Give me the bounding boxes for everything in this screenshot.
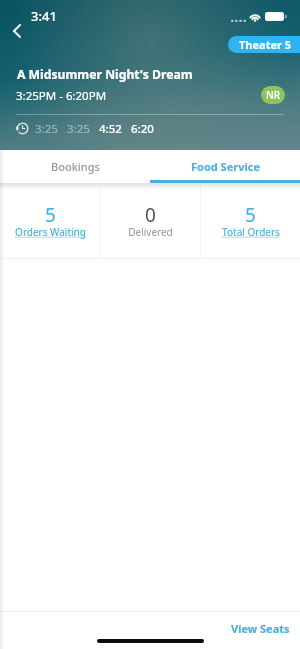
button[interactable]: Food Service (150, 150, 300, 185)
button[interactable]: Bookings (0, 150, 150, 185)
staticText: Orders Waiting (15, 225, 86, 239)
staticText: Food Service (191, 159, 260, 174)
staticText: 4:52 (99, 121, 122, 137)
button[interactable]: Theater 5 (228, 36, 300, 53)
staticText: 3:25PM - 6:20PM (16, 88, 107, 104)
button[interactable]: 5 (201, 185, 300, 259)
staticText: View Seats (231, 621, 290, 636)
staticText: NR (266, 88, 281, 102)
button[interactable]: Back (5, 20, 29, 42)
staticText: Bookings (51, 159, 100, 174)
staticText: 3:25 (67, 121, 90, 137)
staticText: 5 (245, 202, 256, 228)
staticText: 3:41 (31, 7, 57, 25)
staticText: Delivered (128, 225, 173, 239)
staticText: 6:20 (131, 121, 154, 137)
button[interactable]: 5 (0, 185, 100, 259)
staticText: 0 (145, 202, 156, 228)
button[interactable]: 0 (101, 185, 200, 259)
staticText: Theater 5 (239, 37, 292, 52)
staticText: Total Orders (222, 225, 280, 239)
staticText: 5 (45, 202, 56, 228)
button[interactable]: View Seats (231, 621, 290, 636)
staticText: A Midsummer Night's Dream (17, 66, 193, 83)
staticText: 3:25 (35, 121, 58, 137)
